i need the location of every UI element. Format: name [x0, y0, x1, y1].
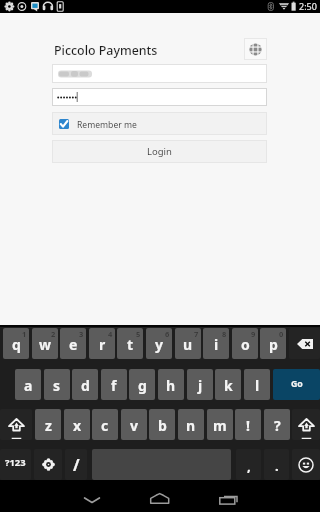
button[interactable]: / — [65, 449, 87, 480]
staticText: q — [12, 335, 21, 354]
button[interactable]: Login — [52, 140, 267, 163]
staticText: 2 — [51, 329, 56, 339]
staticText: 5 — [136, 329, 141, 339]
staticText: 7 — [194, 329, 199, 339]
staticText: . — [275, 457, 279, 475]
button[interactable]: Settings — [34, 449, 62, 480]
staticText: p — [269, 335, 278, 354]
staticText: l — [255, 376, 260, 395]
staticText: v — [130, 416, 138, 435]
button[interactable]: w — [32, 328, 58, 359]
button[interactable]: c — [92, 409, 118, 440]
button[interactable]: e — [60, 328, 86, 359]
button[interactable]: Go — [273, 369, 320, 400]
button[interactable]: , — [236, 449, 261, 480]
button[interactable]: f — [101, 369, 127, 400]
button[interactable]: u — [175, 328, 201, 359]
button[interactable]: Remember me — [52, 112, 267, 135]
button[interactable]: Shift — [0, 409, 32, 440]
button[interactable] — [52, 88, 267, 106]
staticText: c — [101, 416, 109, 435]
staticText: Login — [147, 145, 172, 158]
button[interactable]: d — [72, 369, 98, 400]
staticText: Remember me — [77, 119, 137, 131]
staticText: , — [247, 457, 251, 475]
button[interactable]: x — [64, 409, 90, 440]
button[interactable] — [52, 64, 267, 83]
staticText: a — [24, 376, 33, 395]
staticText: h — [166, 376, 176, 395]
button[interactable]: i — [203, 328, 229, 359]
button[interactable]: . — [264, 449, 289, 480]
staticText: 0 — [279, 329, 284, 339]
staticText: 2:50 — [299, 0, 317, 12]
button[interactable]: y — [146, 328, 172, 359]
staticText: x — [73, 416, 82, 435]
staticText: d — [81, 376, 90, 395]
button[interactable]: ! — [235, 409, 261, 440]
staticText: ?123 — [5, 456, 26, 469]
staticText: 6 — [165, 329, 170, 339]
button[interactable]: Home — [128, 480, 192, 512]
button[interactable]: a — [15, 369, 41, 400]
staticText: t — [127, 335, 134, 354]
button[interactable]: k — [215, 369, 241, 400]
button[interactable]: q — [3, 328, 29, 359]
staticText: Go — [291, 378, 303, 390]
staticText: 8 — [222, 329, 227, 339]
staticText: f — [111, 376, 117, 395]
staticText: i — [214, 335, 219, 354]
button[interactable]: Emoji — [292, 449, 320, 480]
button[interactable]: b — [149, 409, 175, 440]
staticText: 1 — [22, 329, 27, 339]
button[interactable]: g — [129, 369, 155, 400]
staticText: ! — [246, 416, 250, 435]
button[interactable]: n — [178, 409, 204, 440]
button[interactable]: j — [187, 369, 213, 400]
staticText: 9 — [251, 329, 256, 339]
button[interactable]: Backspace — [289, 328, 320, 359]
staticText: ? — [274, 416, 281, 435]
button[interactable]: r — [89, 328, 115, 359]
staticText: 3 — [79, 329, 84, 339]
button[interactable]: l — [244, 369, 270, 400]
button[interactable]: ?123 — [0, 449, 31, 480]
button[interactable]: t — [117, 328, 143, 359]
staticText: s — [53, 376, 61, 395]
staticText: r — [99, 335, 106, 354]
staticText: / — [73, 454, 80, 476]
button[interactable]: Recent apps — [196, 480, 260, 512]
button[interactable]: v — [121, 409, 147, 440]
button[interactable]: Language — [244, 38, 267, 60]
staticText: m — [213, 416, 227, 435]
staticText: z — [45, 416, 52, 435]
staticText: 4 — [108, 329, 113, 339]
button[interactable]: p — [260, 328, 286, 359]
staticText: o — [241, 335, 250, 354]
staticText: k — [224, 376, 233, 395]
button[interactable]: z — [35, 409, 61, 440]
staticText: b — [158, 416, 167, 435]
button[interactable]: Hide keyboard — [61, 480, 125, 512]
staticText: u — [183, 335, 193, 354]
button[interactable]: Shift — [292, 409, 320, 440]
button[interactable]: m — [207, 409, 233, 440]
staticText: w — [39, 335, 51, 354]
button[interactable]: ? — [264, 409, 290, 440]
staticText: j — [198, 376, 203, 395]
button[interactable]: h — [158, 369, 184, 400]
staticText: Piccolo Payments — [54, 42, 158, 59]
button[interactable]: s — [44, 369, 70, 400]
staticText: y — [155, 335, 163, 354]
staticText: e — [69, 335, 78, 354]
staticText: n — [186, 416, 196, 435]
staticText: g — [138, 376, 147, 395]
button[interactable]: o — [232, 328, 258, 359]
